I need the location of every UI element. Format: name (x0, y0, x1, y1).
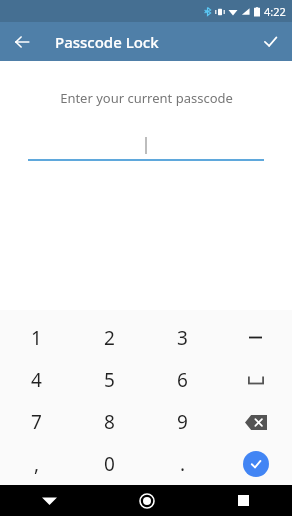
button[interactable]: 2 (73, 316, 146, 359)
button[interactable]: 4 (0, 359, 73, 401)
button[interactable]: 6 (146, 359, 219, 401)
staticText: Passcode Lock (55, 32, 159, 52)
staticText: 8 (104, 409, 115, 435)
button[interactable]: 8 (73, 401, 146, 443)
button[interactable]: Home (98, 485, 195, 516)
button[interactable]: 7 (0, 401, 73, 443)
button[interactable] (28, 129, 264, 161)
staticText: , (34, 451, 40, 477)
staticText: 1 (31, 325, 42, 351)
button[interactable]: Backspace (219, 401, 292, 443)
staticText: 7 (31, 409, 42, 435)
button[interactable]: Minus (219, 316, 292, 359)
staticText: 9 (177, 409, 188, 435)
button[interactable]: Enter (219, 443, 292, 485)
button[interactable]: . (146, 443, 219, 485)
button[interactable]: Confirm (248, 22, 292, 61)
staticText: . (180, 451, 186, 477)
button[interactable]: 1 (0, 316, 73, 359)
staticText: 3 (177, 325, 188, 351)
staticText: 5 (104, 367, 115, 393)
button[interactable]: Hide keyboard (0, 485, 98, 516)
staticText: 0 (104, 451, 115, 477)
button[interactable]: , (0, 443, 73, 485)
button[interactable]: Back (0, 22, 44, 61)
staticText: Enter your current passcode (60, 89, 233, 107)
button[interactable]: 3 (146, 316, 219, 359)
staticText: 4:22 (264, 4, 286, 19)
button[interactable]: 5 (73, 359, 146, 401)
staticText: 4 (31, 367, 42, 393)
button[interactable]: 0 (73, 443, 146, 485)
button[interactable]: 9 (146, 401, 219, 443)
button[interactable]: Space (219, 359, 292, 401)
staticText: 6 (177, 367, 188, 393)
button[interactable]: Recents (195, 485, 292, 516)
staticText: 2 (104, 325, 115, 351)
